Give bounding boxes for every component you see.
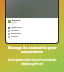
button[interactable] [6, 18, 58, 23]
button[interactable] [6, 29, 58, 32]
button[interactable] [6, 32, 58, 35]
staticText: Manage its content to your convenience [5, 45, 59, 55]
button[interactable] [6, 26, 58, 29]
staticText: Lorem ipsum dolor sit amet consectetur a… [5, 58, 59, 66]
button[interactable] [6, 35, 58, 38]
